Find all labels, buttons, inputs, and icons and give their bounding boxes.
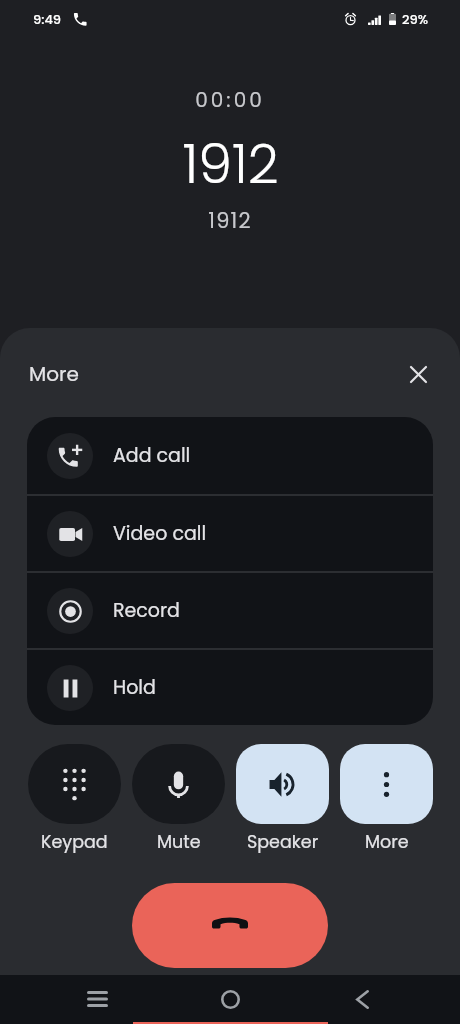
staticText: Keypad	[41, 830, 108, 855]
staticText: Hold	[113, 674, 156, 701]
button[interactable]: Home	[210, 979, 250, 1019]
staticText: 1912	[182, 126, 279, 202]
button[interactable]: Close	[400, 356, 436, 392]
button[interactable]: Record	[27, 573, 433, 648]
staticText: 00:00	[195, 86, 265, 114]
staticText: Add call	[113, 442, 191, 469]
staticText: 1912	[208, 206, 252, 235]
button[interactable]: Add call	[27, 417, 433, 494]
staticText: More	[365, 830, 409, 855]
button[interactable]: Back	[342, 979, 382, 1019]
staticText: 9:49	[33, 10, 62, 28]
button[interactable]: Speaker	[236, 744, 329, 824]
staticText: 29%	[402, 10, 429, 28]
button[interactable]: Hold	[27, 650, 433, 725]
button[interactable]: End call	[132, 883, 328, 968]
button[interactable]: Recent apps	[77, 979, 117, 1019]
button[interactable]: Mute	[132, 744, 225, 824]
button[interactable]: Video call	[27, 496, 433, 571]
staticText: Speaker	[247, 830, 319, 855]
staticText: Mute	[157, 830, 201, 855]
staticText: Video call	[113, 520, 207, 547]
button[interactable]: Keypad	[28, 744, 121, 824]
button[interactable]: More	[340, 744, 433, 824]
staticText: More	[29, 360, 79, 388]
staticText: Record	[113, 597, 180, 624]
